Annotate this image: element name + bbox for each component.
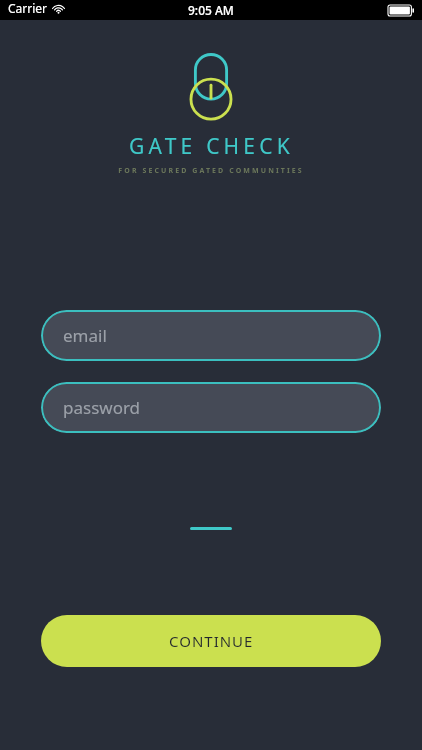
button[interactable]: email (41, 310, 381, 361)
staticText: CONTINUE (169, 631, 254, 651)
staticText: FOR SECURED GATED COMMUNITIES (118, 166, 304, 176)
staticText: 9:05 AM (188, 2, 234, 18)
button[interactable]: password (41, 382, 381, 433)
button[interactable]: CONTINUE (41, 615, 381, 667)
staticText: password (63, 396, 141, 419)
staticText: email (63, 324, 107, 347)
other: Gate Check logo (185, 52, 237, 124)
staticText: Carrier (8, 0, 48, 16)
button[interactable] (190, 527, 232, 530)
staticText: GATE CHECK (129, 132, 294, 161)
